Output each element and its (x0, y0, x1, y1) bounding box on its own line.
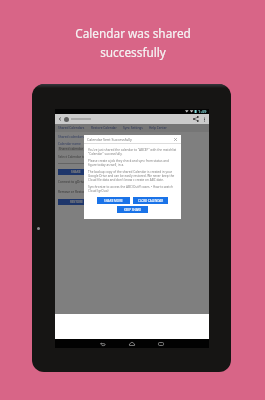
button[interactable]: Sync Settings (122, 124, 144, 132)
button[interactable]: RESTORE (58, 199, 94, 205)
button[interactable]: Help Center (148, 124, 168, 132)
button[interactable]: Back (97, 339, 109, 348)
button[interactable]: Close dialog (173, 137, 178, 142)
button[interactable]: KEEP SHARE (117, 206, 148, 213)
staticText: Restore Calendar (91, 126, 117, 130)
button[interactable]: SHARE MORE (97, 197, 130, 204)
staticText: Calendar was shared successfully (75, 25, 191, 60)
staticText: SHARE (71, 170, 81, 174)
button[interactable]: Home (126, 339, 138, 348)
staticText: Shared calendar (58, 147, 84, 151)
staticText: Shared Calendars (58, 126, 85, 130)
staticText: Remove or Restore (58, 190, 87, 194)
staticText: You've just shared the calendar to "ABCE… (88, 148, 177, 156)
staticText: 1:49 (198, 109, 207, 114)
staticText: Shared calendars (58, 135, 84, 139)
staticText: KEEP SHARE (124, 208, 142, 212)
button[interactable]: SHARE (58, 169, 94, 175)
staticText: Sync Settings (123, 126, 143, 130)
button[interactable]: Back (57, 116, 63, 122)
staticText: Help Center (149, 126, 167, 130)
staticText: CLOSE CALENDAR (138, 199, 164, 203)
button[interactable]: Share (192, 115, 200, 123)
staticText: RESTORE (70, 200, 83, 204)
button[interactable]: Shared Calendars (57, 124, 86, 132)
staticText: The backup copy of the shared Calendar i… (88, 170, 177, 182)
button[interactable]: Restore Calendar (90, 124, 118, 132)
staticText: Select Calendar to share (58, 155, 95, 159)
staticText: SHARE MORE (104, 199, 123, 203)
staticText: Please create a job they check and sync … (88, 159, 177, 167)
button[interactable]: CLOSE CALENDAR (133, 197, 168, 204)
staticText: Synchronize to access the ABC/Outff case… (88, 185, 177, 193)
button[interactable]: Recent apps (155, 339, 167, 348)
staticText: Calendar name (58, 142, 81, 146)
staticText: Calendar Sent Successfully (87, 137, 132, 142)
button[interactable]: More options (201, 116, 207, 122)
staticText: Connect to gDrive (58, 180, 85, 184)
